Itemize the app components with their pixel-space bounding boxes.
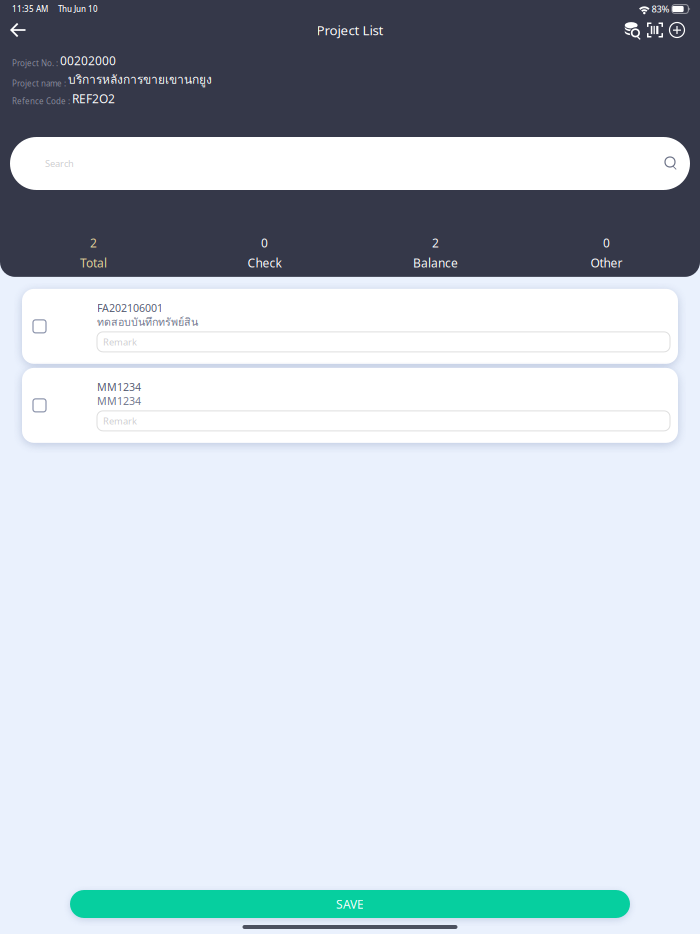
button[interactable]: Select MM1234 [22,368,97,443]
staticText: MM1234 [97,380,141,394]
button[interactable]: Select FA202106001 [22,289,97,364]
staticText: MM1234 [97,394,141,408]
button[interactable]: 2 [8,235,179,271]
staticText: 0 [261,235,268,251]
staticText: Balance [413,255,458,271]
button[interactable]: Search database [621,16,644,43]
staticText: ทดสอบบันทึกทรัพย์สิน [97,314,198,330]
staticText: Remark [103,415,137,427]
staticText: 2 [90,235,97,251]
staticText: Project name : [12,78,68,89]
staticText: Refence Code : [12,96,72,106]
staticText: Total [80,255,107,271]
staticText: Search [45,157,74,170]
staticText: 2 [432,235,439,251]
staticText: Other [590,255,622,271]
staticText: 0 [603,235,610,251]
button[interactable]: SAVE [70,890,630,918]
staticText: Check [247,255,281,271]
staticText: REF2O2 [72,90,115,106]
staticText: Remark [103,336,137,348]
button[interactable]: 0 [179,235,350,271]
button[interactable]: 0 [521,235,692,271]
staticText: 00202000 [60,52,116,68]
staticText: Project List [316,21,383,39]
staticText: 83% [649,3,669,15]
staticText: SAVE [336,896,364,912]
staticText: บริการหลังการขายเขานกยูง [68,70,212,89]
button[interactable]: Back [0,17,36,42]
button[interactable]: 2 [350,235,521,271]
button[interactable]: Scan barcode [644,17,666,42]
staticText: FA202106001 [97,301,163,315]
staticText: Thu Jun 10 [48,4,98,14]
staticText: 11:35 AM [12,4,48,14]
button[interactable]: Add [666,17,688,43]
staticText: Project No. : [12,58,60,68]
